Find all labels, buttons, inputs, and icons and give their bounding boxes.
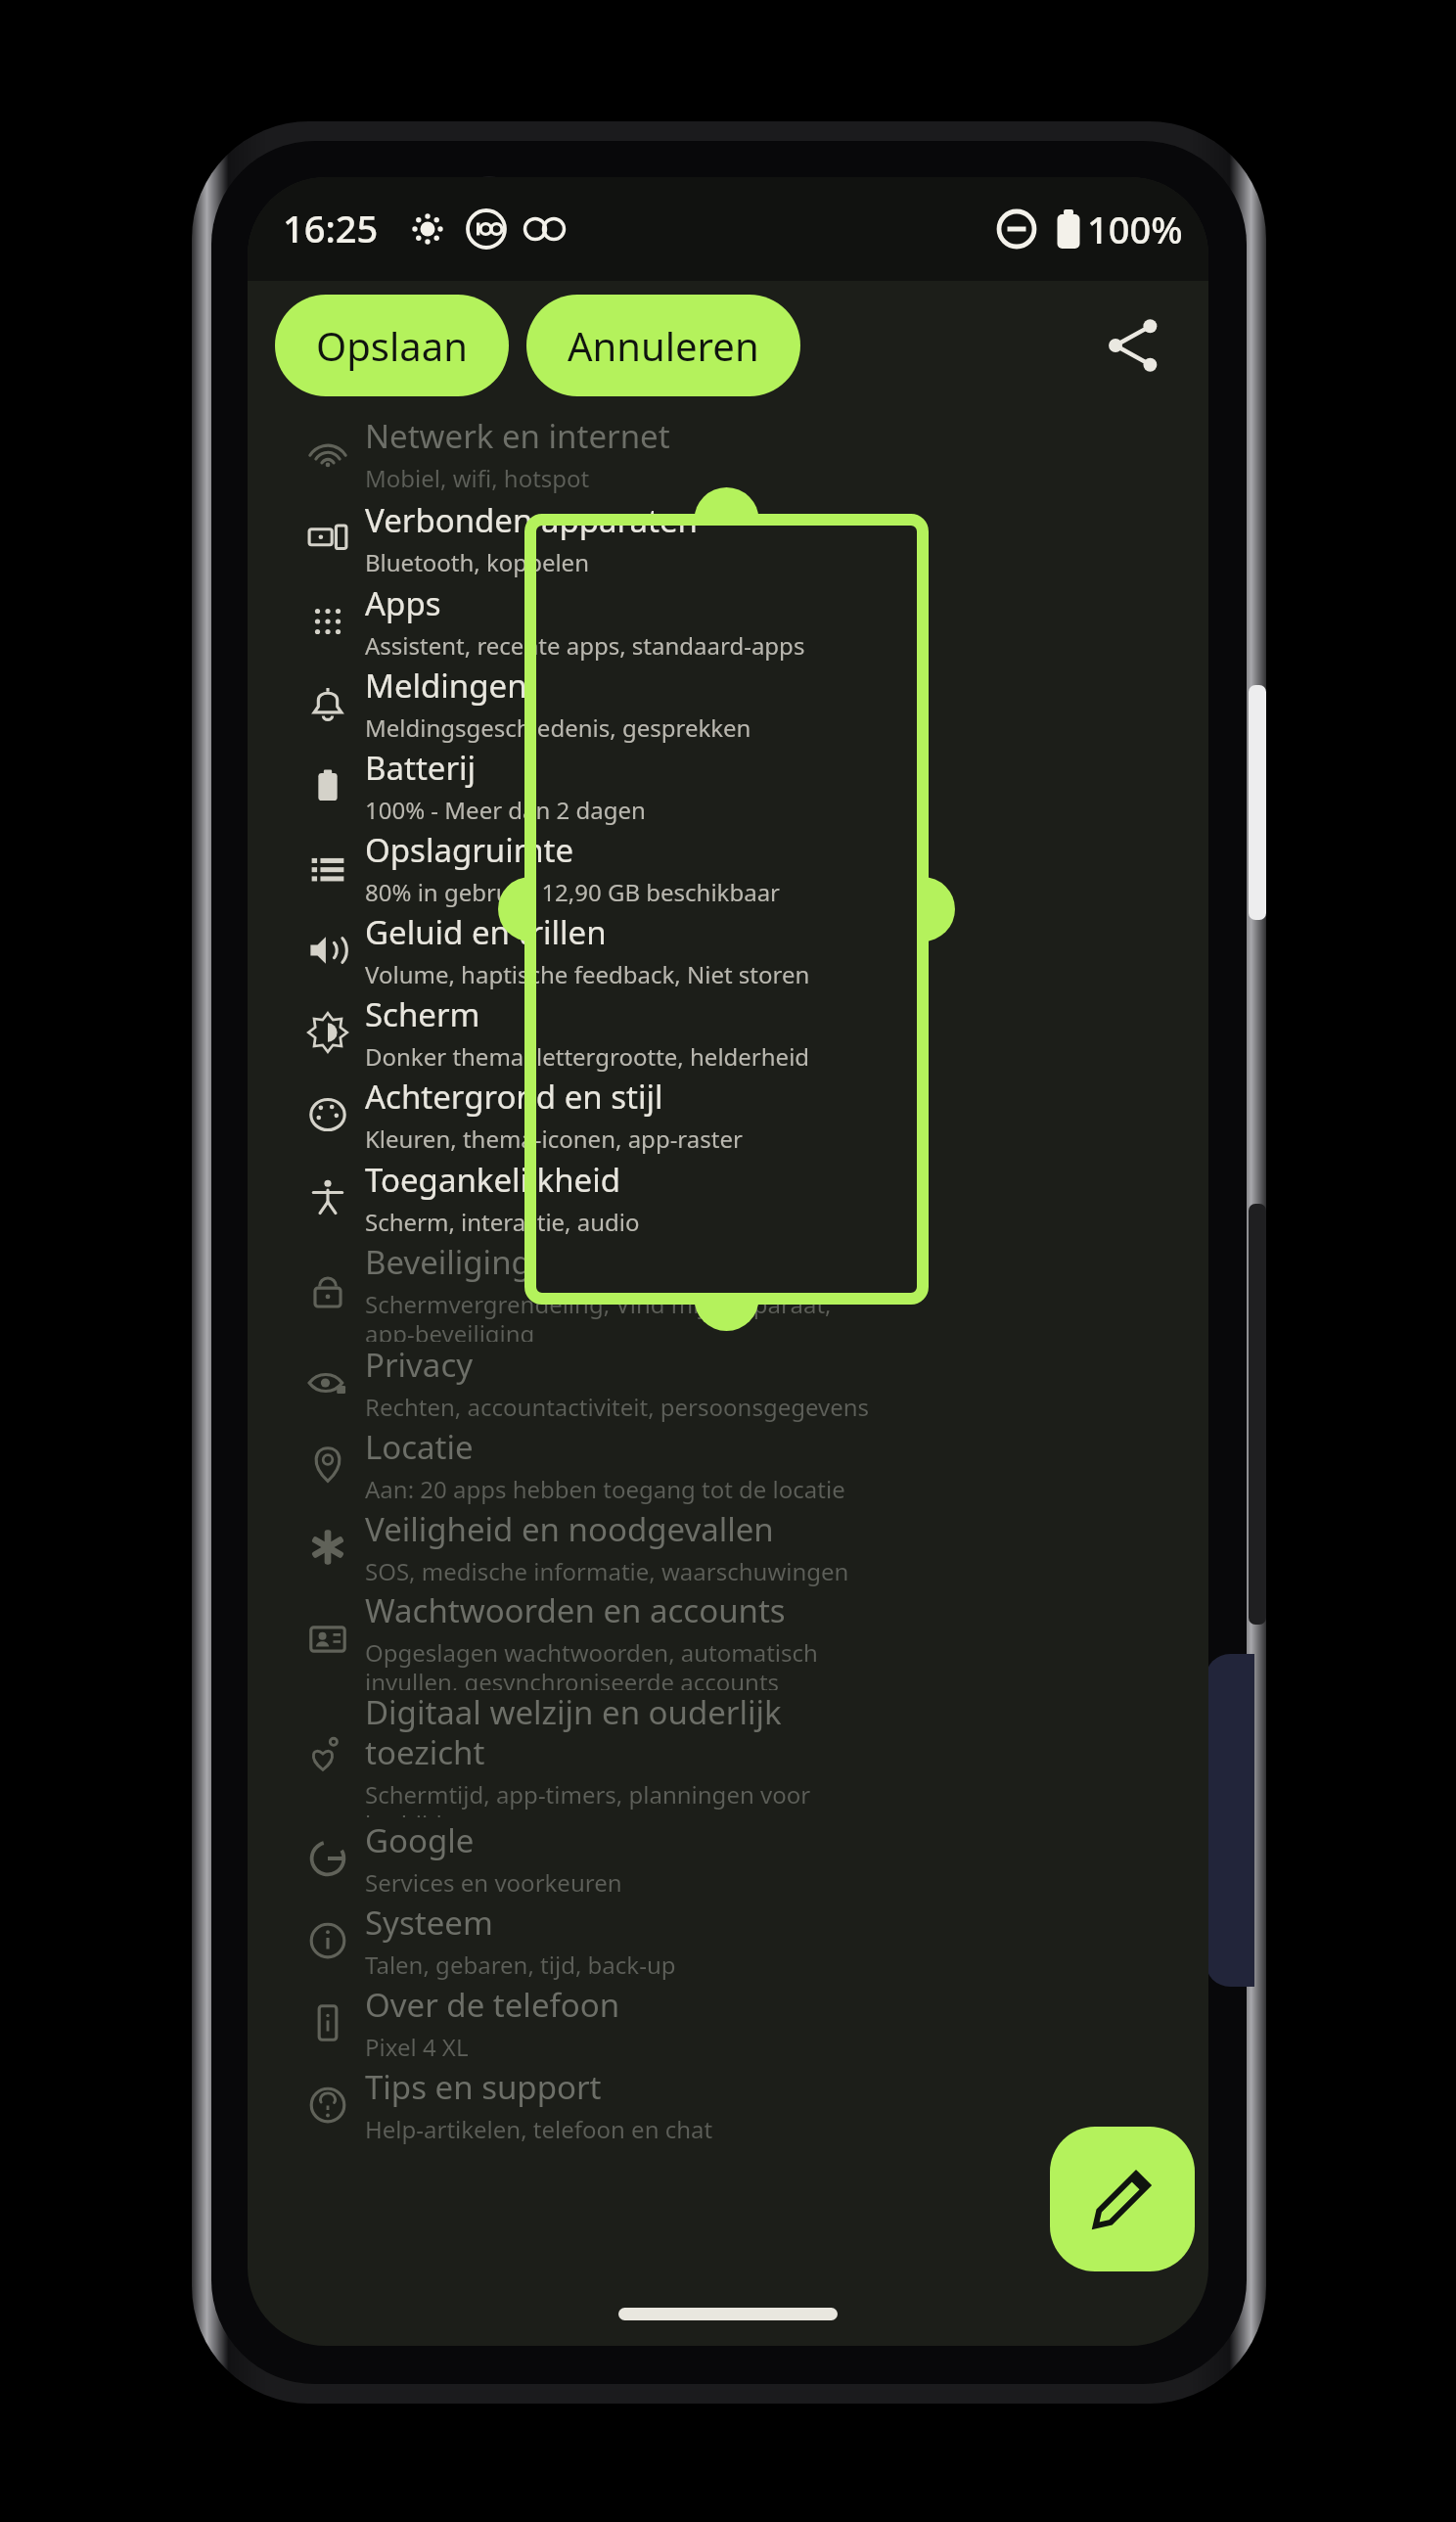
button[interactable]: Batterij [248,745,1208,827]
button[interactable]: Tips en support [248,2064,1208,2146]
button[interactable]: Verbonden apparaten [248,496,1208,580]
button[interactable]: Locatie [248,1424,1208,1506]
staticText: Bluetooth, koppelen [365,546,589,578]
button[interactable]: Opslaan [275,295,509,396]
button[interactable]: Privacy [248,1342,1208,1424]
staticText: Batterij [365,746,477,790]
button[interactable]: Netwerk en internet [248,412,1208,496]
staticText: Geluid en trillen [365,910,607,954]
staticText: Opslaan [316,319,468,372]
staticText: Meldingen [365,664,527,708]
button[interactable]: Achtergrond en stijl [248,1074,1208,1156]
staticText: SOS, medische informatie, waarschuwingen [365,1555,849,1587]
staticText: 80% in gebruik, 12,90 GB beschikbaar [365,876,781,908]
staticText: Services en voorkeuren [365,1866,622,1899]
button[interactable]: Beveiliging [248,1240,1208,1342]
staticText: Mobiel, wifi, hotspot [365,462,590,494]
staticText: Beveiliging [365,1240,531,1284]
button[interactable]: Google [248,1817,1208,1900]
staticText: Toegankelijkheid [365,1158,621,1202]
staticText: 16:25 [283,203,379,253]
staticText: Wachtwoorden en accounts [365,1588,786,1632]
staticText: 100% [1087,204,1183,254]
staticText: Aan: 20 apps hebben toegang tot de locat… [365,1473,845,1505]
staticText: Verbonden apparaten [365,498,698,542]
staticText: Netwerk en internet [365,414,670,458]
staticText: Over de telefoon [365,1983,620,2027]
staticText: Scherm, interactie, audio [365,1206,640,1238]
button[interactable]: Over de telefoon [248,1982,1208,2064]
button[interactable]: Systeem [248,1900,1208,1982]
staticText: 100% - Meer dan 2 dagen [365,794,646,826]
button[interactable]: Digitaal welzijn en ouderlijk toezicht [248,1690,1208,1817]
staticText: Kleuren, thema-iconen, app-raster [365,1123,743,1155]
staticText: Assistent, recente apps, standaard-apps [365,629,805,662]
button[interactable]: Bewerken [1050,2127,1195,2271]
staticText: Scherm [365,992,480,1036]
staticText: Annuleren [568,319,759,372]
staticText: Rechten, accountactiviteit, persoonsgege… [365,1391,870,1423]
staticText: Achtergrond en stijl [365,1075,663,1119]
staticText: Digitaal welzijn en ouderlijk toezicht [365,1690,782,1774]
button[interactable]: Annuleren [526,295,800,396]
staticText: Pixel 4 XL [365,2031,469,2063]
staticText: Donker thema, lettergrootte, helderheid [365,1040,810,1073]
staticText: Veiligheid en noodgevallen [365,1507,774,1551]
button[interactable]: Toegankelijkheid [248,1156,1208,1240]
staticText: Volume, haptische feedback, Niet storen [365,958,810,990]
staticText: Schermvergrendeling, Vind mijn apparaat,… [365,1288,832,1342]
staticText: Talen, gebaren, tijd, back-up [365,1949,676,1981]
staticText: Systeem [365,1901,493,1945]
staticText: Help-artikelen, telefoon en chat [365,2113,713,2145]
staticText: Google [365,1818,475,1862]
button[interactable]: Delen [1085,298,1181,393]
staticText: Privacy [365,1343,474,1387]
staticText: Opslagruimte [365,828,574,872]
staticText: Schermtijd, app-timers, planningen voor … [365,1778,811,1817]
staticText: Locatie [365,1425,474,1469]
staticText: Apps [365,581,441,625]
staticText: Meldingsgeschiedenis, gesprekken [365,711,751,744]
button[interactable]: Scherm [248,991,1208,1074]
button[interactable]: Apps [248,580,1208,663]
button[interactable]: Wachtwoorden en accounts [248,1588,1208,1690]
button[interactable]: Geluid en trillen [248,909,1208,991]
button[interactable]: Veiligheid en noodgevallen [248,1506,1208,1588]
staticText: Opgeslagen wachtwoorden, automatisch inv… [365,1636,818,1690]
staticText: Tips en support [365,2065,602,2109]
button[interactable]: Opslagruimte [248,827,1208,909]
button[interactable]: Meldingen [248,663,1208,745]
